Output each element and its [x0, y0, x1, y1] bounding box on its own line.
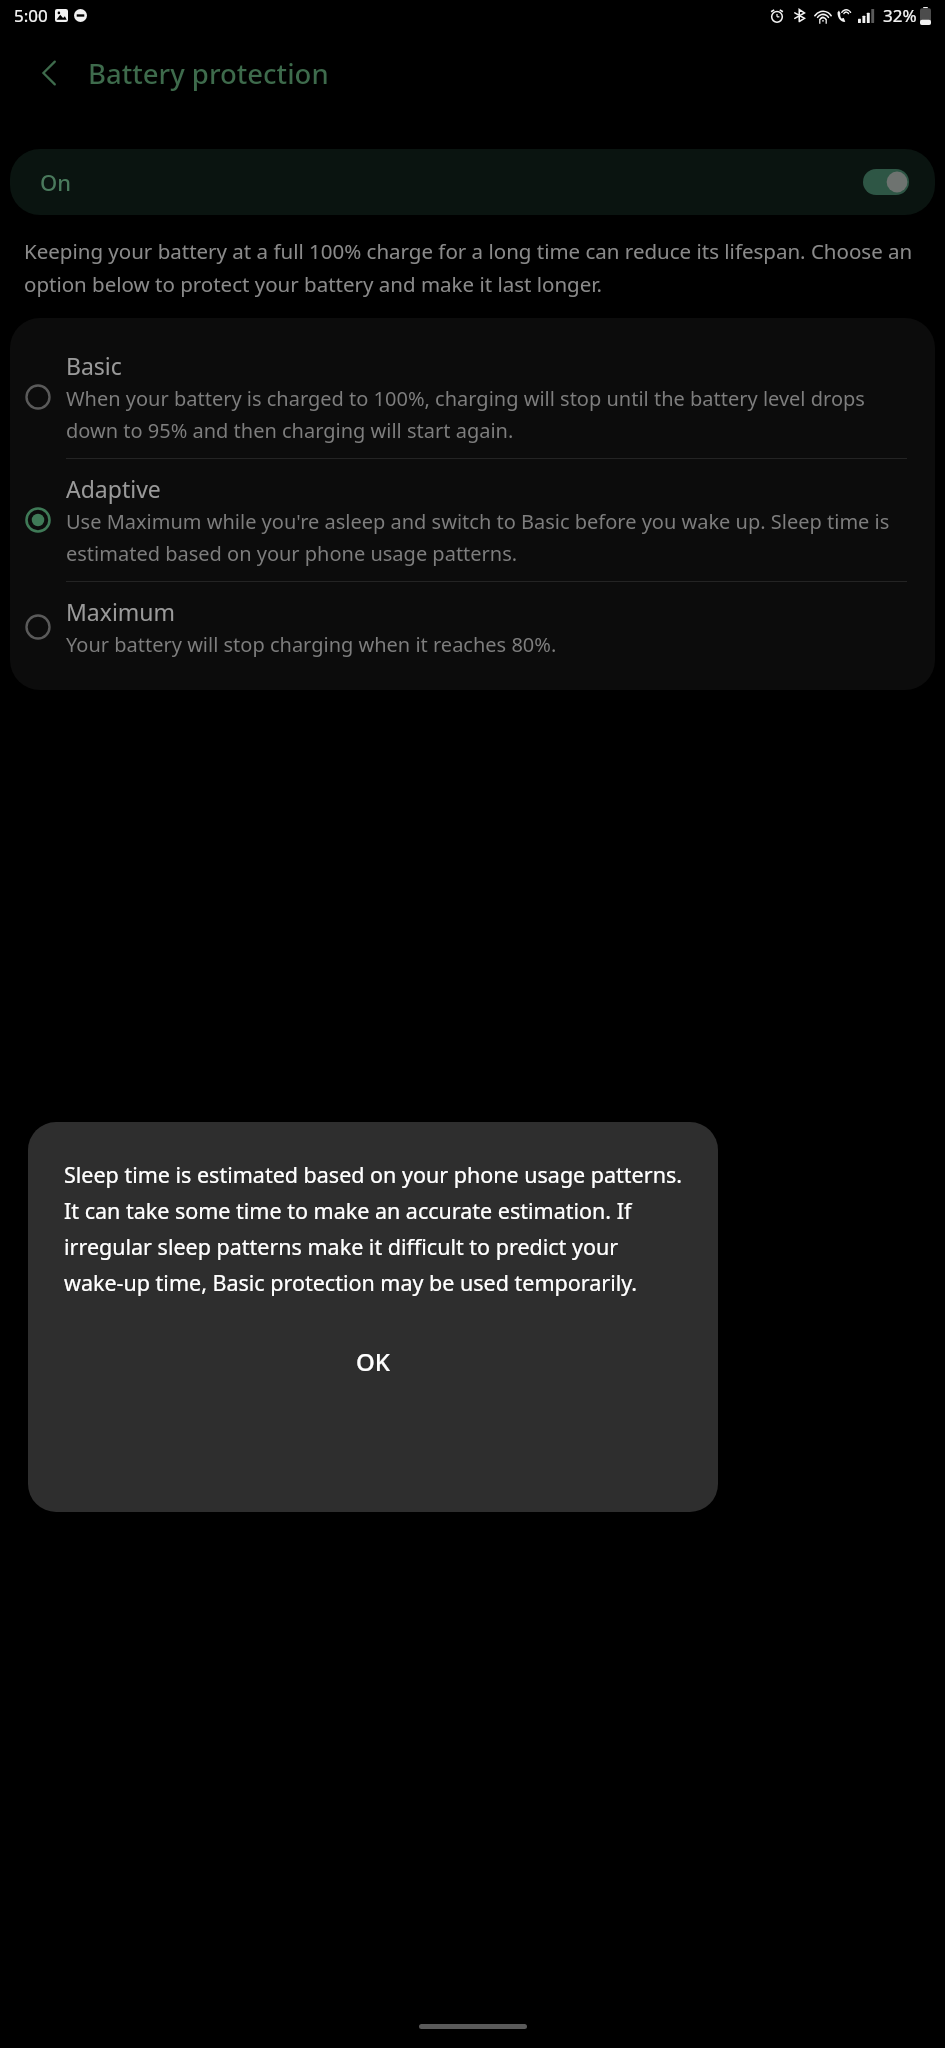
staticText: When your battery is charged to 100%, ch…: [66, 385, 911, 444]
staticText: Keeping your battery at a full 100% char…: [24, 237, 921, 298]
button[interactable]: Maximum: [10, 582, 935, 672]
button[interactable]: OK: [28, 1324, 718, 1398]
button[interactable]: Adaptive: [10, 459, 935, 581]
button[interactable]: Back: [22, 45, 78, 101]
staticText: 32%: [883, 4, 917, 27]
staticText: Battery protection: [88, 55, 329, 92]
staticText: Use Maximum while you're asleep and swit…: [66, 508, 911, 567]
staticText: Maximum: [66, 596, 176, 627]
staticText: Your battery will stop charging when it …: [66, 631, 557, 658]
staticText: Sleep time is estimated based on your ph…: [64, 1160, 682, 1298]
staticText: Basic: [66, 350, 122, 381]
staticText: 5:00: [14, 4, 48, 27]
staticText: OK: [356, 1345, 390, 1378]
button[interactable]: Basic: [10, 336, 935, 458]
button[interactable]: On: [10, 149, 935, 215]
staticText: Adaptive: [66, 473, 161, 504]
staticText: On: [40, 167, 72, 197]
